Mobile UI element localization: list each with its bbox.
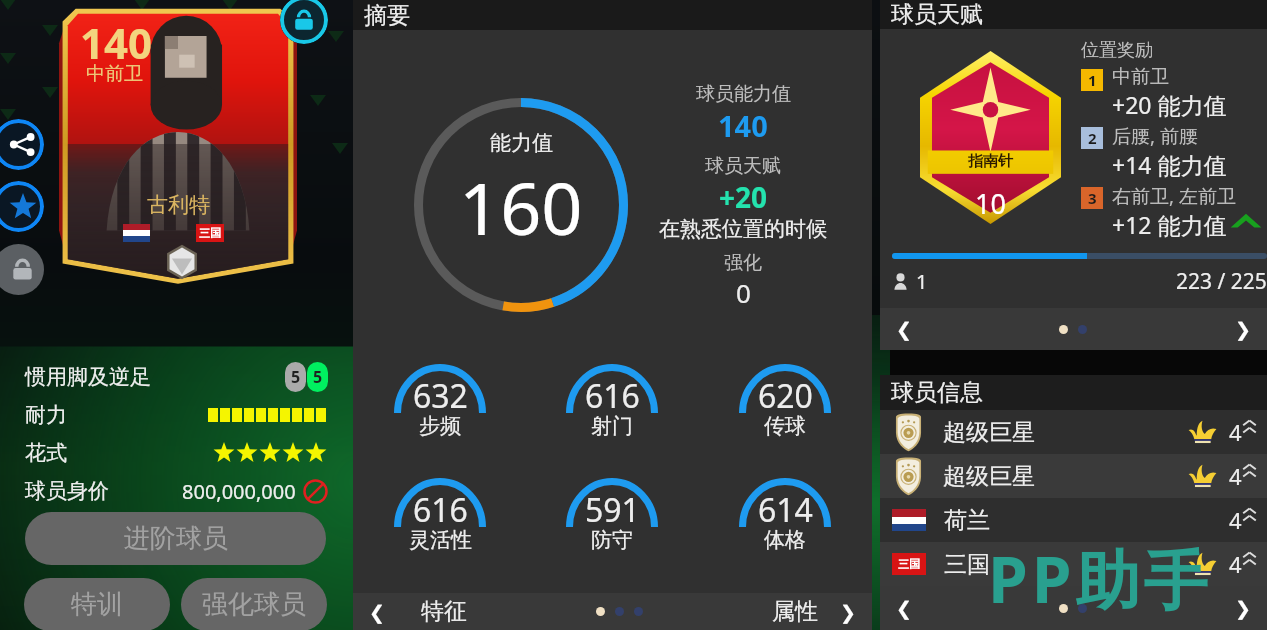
staticText: 后腰, 前腰 — [1112, 123, 1199, 149]
staticText: +20 — [719, 178, 768, 216]
button[interactable]: Locked — [280, 0, 328, 44]
staticText: 800,000,000 — [182, 478, 296, 505]
button[interactable]: Next — [830, 594, 866, 630]
staticText: 5 — [313, 366, 323, 388]
staticText: ❯ — [840, 601, 856, 623]
button[interactable]: 超级巨星 — [892, 410, 1257, 454]
staticText: 特训 — [71, 588, 123, 621]
staticText: 10 — [975, 185, 1006, 222]
staticText: 616 — [413, 488, 468, 532]
staticText: ❯ — [1235, 597, 1251, 619]
staticText: 灵活性 — [409, 527, 472, 553]
staticText: 160 — [459, 158, 583, 256]
button[interactable]: Favorite — [0, 181, 44, 232]
staticText: 球员身价 — [25, 478, 109, 504]
staticText: 超级巨星 — [943, 418, 1035, 447]
staticText: 4 — [1229, 505, 1242, 535]
staticText: 步频 — [419, 413, 461, 439]
staticText: 射门 — [591, 413, 633, 439]
button[interactable]: 强化球员 — [181, 578, 327, 630]
staticText: 球员能力值 — [696, 82, 791, 106]
staticText: 140 — [80, 14, 153, 71]
button[interactable]: Next — [1225, 590, 1261, 626]
staticText: 体格 — [764, 527, 806, 553]
button[interactable]: 特训 — [24, 578, 170, 630]
staticText: 4 — [1229, 461, 1242, 491]
staticText: 摘要 — [364, 1, 410, 30]
button[interactable]: Previous — [886, 590, 922, 626]
button[interactable]: Previous — [886, 311, 922, 347]
staticText: 591 — [585, 488, 640, 532]
button[interactable]: Lock — [0, 244, 44, 295]
button[interactable]: 进阶球员 — [25, 512, 326, 565]
button[interactable]: Player card, 古利特, 140 — [59, 0, 297, 288]
staticText: 5 — [291, 366, 301, 388]
staticText: ❮ — [369, 601, 385, 623]
staticText: 指南针 — [968, 152, 1013, 171]
staticText: +14 能力值 — [1112, 149, 1227, 180]
staticText: ❮ — [896, 318, 912, 340]
staticText: 三国 — [944, 550, 990, 579]
staticText: 防守 — [591, 527, 633, 553]
staticText: 4 — [1229, 417, 1242, 447]
button[interactable]: Next — [1225, 311, 1261, 347]
staticText: 特征 — [421, 597, 467, 626]
staticText: 中前卫 — [1112, 65, 1169, 89]
staticText: 620 — [758, 374, 813, 418]
staticText: 传球 — [764, 413, 806, 439]
button[interactable]: 超级巨星 — [892, 454, 1257, 498]
staticText: 球员信息 — [891, 378, 983, 407]
staticText: 花式 — [25, 440, 67, 466]
staticText: 中前卫 — [86, 62, 143, 86]
button[interactable]: Previous — [359, 594, 395, 630]
staticText: 能力值 — [490, 130, 553, 156]
staticText: 2 — [1088, 128, 1097, 148]
staticText: 球员天赋 — [705, 154, 781, 178]
staticText: 古利特 — [147, 192, 210, 218]
staticText: 进阶球员 — [124, 522, 228, 555]
staticText: 3 — [1088, 188, 1097, 208]
staticText: PP助手 — [988, 535, 1212, 622]
staticText: ❮ — [896, 597, 912, 619]
staticText: 在熟悉位置的时候 — [659, 216, 827, 242]
staticText: +12 能力值 — [1112, 209, 1227, 240]
staticText: 强化球员 — [202, 588, 306, 621]
staticText: 荷兰 — [944, 506, 990, 535]
button[interactable]: 荷兰 — [892, 498, 1257, 542]
staticText: 位置奖励 — [1081, 39, 1153, 62]
staticText: 强化 — [724, 251, 762, 275]
staticText: ❯ — [1235, 318, 1251, 340]
staticText: 三国 — [199, 226, 221, 240]
staticText: 1 — [1088, 70, 1097, 90]
staticText: 4 — [1229, 549, 1242, 579]
staticText: 1 — [916, 268, 928, 295]
staticText: 超级巨星 — [943, 462, 1035, 491]
button[interactable]: Share — [0, 119, 44, 170]
button[interactable]: Talent badge 指南针 level 10 — [920, 51, 1061, 224]
staticText: 140 — [718, 106, 768, 145]
staticText: 616 — [585, 374, 640, 418]
staticText: 0 — [736, 275, 751, 310]
staticText: 耐力 — [25, 402, 67, 428]
staticText: +20 能力值 — [1112, 89, 1227, 120]
staticText: 球员天赋 — [891, 0, 983, 29]
staticText: 223 / 225 — [1176, 267, 1267, 296]
staticText: 属性 — [772, 597, 818, 626]
staticText: 右前卫, 左前卫 — [1112, 183, 1237, 209]
button[interactable]: 三国 — [892, 542, 1257, 586]
staticText: 632 — [413, 374, 468, 418]
staticText: 614 — [758, 488, 813, 532]
staticText: 三国 — [898, 557, 920, 571]
staticText: 惯用脚及逆足 — [25, 364, 151, 390]
